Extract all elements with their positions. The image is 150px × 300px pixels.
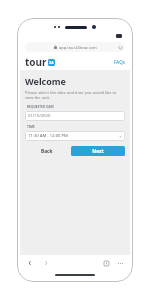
staticText: Welcome: [25, 75, 66, 87]
button[interactable]: Tabs: [116, 259, 124, 267]
staticText: 11:30 AM - 12:00 PM: [28, 133, 68, 139]
staticText: 01/15/2020: [28, 113, 51, 119]
button[interactable]: Reload: [118, 45, 123, 50]
staticText: Next: [92, 148, 104, 155]
button[interactable]: Back: [25, 146, 68, 156]
staticText: Back: [41, 148, 53, 155]
staticText: 24: [49, 60, 54, 65]
button[interactable]: Back: [26, 259, 34, 267]
button[interactable]: tour: [25, 55, 55, 69]
button[interactable]: Share: [102, 259, 110, 267]
staticText: TIME: [27, 125, 35, 129]
staticText: FAQs: [114, 59, 125, 65]
button[interactable]: 01/15/2020: [25, 111, 125, 121]
button[interactable]: Forward: [42, 259, 50, 267]
staticText: tour: [25, 55, 47, 69]
button[interactable]: Next: [71, 146, 125, 156]
button[interactable]: app.tour24now.com: [25, 42, 125, 52]
button[interactable]: 11:30 AM - 12:00 PM: [25, 131, 125, 141]
button[interactable]: FAQs: [114, 59, 125, 65]
staticText: Please select the date and time you woul…: [25, 90, 125, 100]
staticText: app.tour24now.com: [59, 45, 97, 50]
staticText: REQUESTED DATE: [27, 105, 55, 109]
